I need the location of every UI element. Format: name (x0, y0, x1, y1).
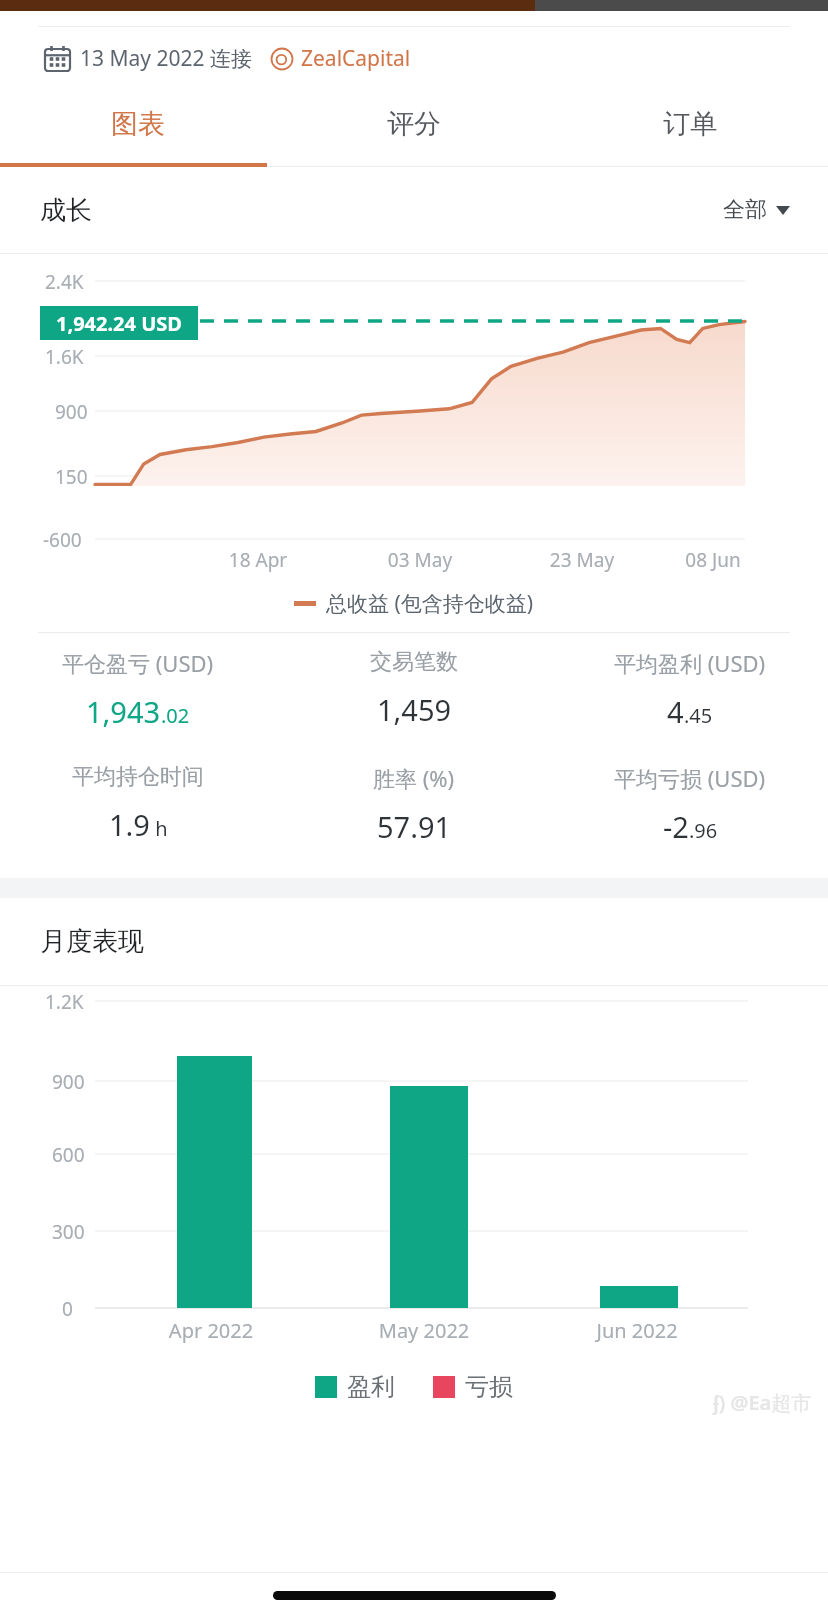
staticText: h (150, 815, 168, 842)
staticText: 0 (62, 1296, 73, 1322)
staticText: 总收益 (包含持仓收益) (326, 589, 534, 618)
staticText: 平均盈利 (USD) (614, 648, 766, 678)
staticText: 1,459 (377, 690, 452, 729)
staticText: 成长 (40, 194, 92, 227)
staticText: Jun 2022 (577, 1317, 697, 1344)
staticText: 亏损 (465, 1372, 513, 1402)
button[interactable]: 图表 (0, 89, 276, 167)
staticText: 1.2K (45, 989, 84, 1015)
staticText: 900 (55, 399, 88, 425)
staticText: 18 Apr (212, 547, 304, 573)
staticText: 03 May (374, 547, 466, 573)
button[interactable]: 胜率 (%) (276, 763, 552, 846)
button[interactable]: 交易笔数 (276, 648, 552, 729)
button[interactable]: 平均亏损 (USD) (552, 763, 828, 846)
staticText: 平仓盈亏 (USD) (62, 648, 214, 678)
staticText: 交易笔数 (370, 648, 458, 676)
staticText: .45 (684, 702, 713, 729)
staticText: 全部 (723, 196, 767, 224)
button[interactable]: ZealCapital (270, 44, 411, 73)
staticText: 13 May 2022 连接 (80, 44, 252, 73)
staticText: 2.4K (45, 269, 84, 295)
staticText: 23 May (536, 547, 628, 573)
button[interactable]: 平均盈利 (USD) (552, 648, 828, 731)
staticText: 150 (55, 464, 88, 490)
staticText: Apr 2022 (151, 1317, 271, 1344)
staticText: 平均持仓时间 (72, 763, 204, 791)
staticText: 订单 (663, 107, 717, 141)
staticText: 900 (52, 1069, 85, 1095)
staticText: 08 Jun (667, 547, 759, 573)
staticText: 4 (667, 692, 684, 731)
button[interactable]: 订单 (552, 89, 828, 167)
staticText: 盈利 (347, 1372, 395, 1402)
button[interactable]: 全部 (723, 196, 790, 224)
staticText: .96 (689, 817, 718, 844)
button[interactable]: 评分 (276, 89, 552, 167)
staticText: ʄ) @Ea超市 (713, 1389, 812, 1416)
staticText: 图表 (111, 107, 165, 141)
staticText: 评分 (387, 107, 441, 141)
staticText: May 2022 (364, 1317, 484, 1344)
staticText: 胜率 (%) (373, 763, 455, 793)
staticText: 600 (52, 1142, 85, 1168)
staticText: .02 (161, 702, 190, 729)
button[interactable]: 平均持仓时间 (0, 763, 276, 844)
staticText: 月度表现 (40, 925, 144, 958)
staticText: ZealCapital (301, 44, 411, 73)
staticText: 1.6K (45, 344, 84, 370)
button[interactable]: 平仓盈亏 (USD) (0, 648, 276, 731)
staticText: -600 (43, 527, 82, 553)
staticText: 57.91 (377, 807, 452, 846)
staticText: 1.9 (109, 805, 150, 844)
staticText: -2 (663, 807, 689, 846)
staticText: 平均亏损 (USD) (614, 763, 766, 793)
staticText: 300 (52, 1219, 85, 1245)
staticText: 1,943 (86, 692, 161, 731)
staticText: 1,942.24 USD (56, 310, 182, 337)
